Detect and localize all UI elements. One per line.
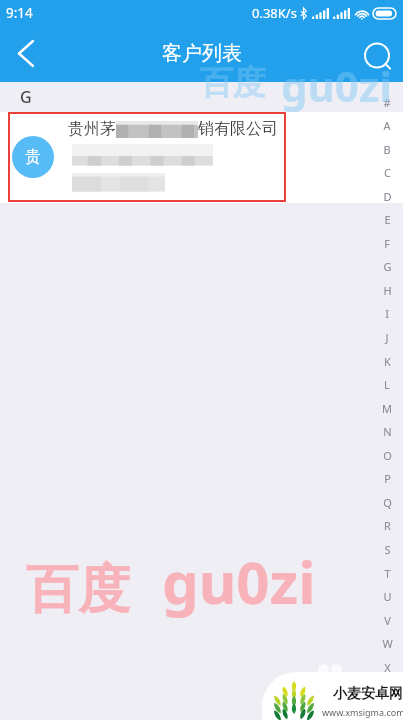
staticText: V — [384, 613, 391, 628]
button[interactable]: Action — [318, 664, 329, 675]
button[interactable]: V — [378, 609, 396, 632]
button[interactable]: B — [378, 138, 396, 161]
staticText: J — [385, 330, 389, 345]
staticText: B — [383, 142, 391, 157]
staticText: F — [384, 236, 390, 251]
staticText: T — [384, 566, 391, 581]
button[interactable]: J — [378, 326, 396, 349]
staticText: I — [385, 306, 389, 321]
staticText: C — [384, 165, 391, 180]
button[interactable]: Q — [378, 491, 396, 514]
staticText: 百度 — [200, 62, 266, 104]
staticText: Y — [384, 683, 391, 698]
button[interactable]: N — [378, 420, 396, 443]
staticText: 贵 — [25, 147, 41, 167]
button[interactable]: A — [378, 114, 396, 137]
button[interactable]: Back — [0, 25, 52, 82]
button[interactable]: L — [378, 373, 396, 396]
button[interactable]: G — [378, 255, 396, 278]
button[interactable]: W — [378, 632, 396, 655]
staticText: U — [383, 589, 392, 604]
staticText: L — [384, 377, 390, 392]
button[interactable]: C — [378, 161, 396, 184]
staticText: Q — [383, 495, 392, 510]
button[interactable]: M — [378, 397, 396, 420]
button[interactable]: T — [378, 562, 396, 585]
staticText: M — [382, 401, 392, 416]
button[interactable]: U — [378, 585, 396, 608]
button[interactable]: F — [378, 232, 396, 255]
staticText: N — [383, 424, 392, 439]
staticText: W — [382, 636, 393, 651]
staticText: H — [383, 283, 392, 298]
button[interactable]: P — [378, 467, 396, 490]
button[interactable]: E — [378, 208, 396, 231]
staticText: gu0zi — [162, 542, 316, 621]
button[interactable]: Y — [378, 679, 396, 702]
staticText: G — [383, 259, 392, 274]
staticText: Z — [384, 707, 391, 720]
staticText: O — [383, 448, 392, 463]
button[interactable]: H — [378, 279, 396, 302]
staticText: G — [20, 86, 32, 108]
button[interactable]: O — [378, 444, 396, 467]
button[interactable]: # — [378, 91, 396, 114]
staticText: gu0zi — [281, 57, 393, 114]
staticText: # — [383, 95, 391, 110]
button[interactable]: X — [378, 656, 396, 679]
staticText: A — [383, 118, 391, 133]
staticText: 销有限公司 — [198, 119, 278, 139]
button[interactable]: I — [378, 302, 396, 325]
staticText: 0.38K/s — [252, 4, 297, 22]
staticText: 客户列表 — [162, 41, 242, 66]
button[interactable]: R — [378, 514, 396, 537]
staticText: 贵州茅 — [68, 119, 116, 139]
button[interactable]: Search — [351, 25, 403, 82]
staticText: E — [384, 212, 391, 227]
staticText: D — [383, 189, 392, 204]
staticText: P — [384, 471, 391, 486]
button[interactable]: 贵 — [0, 112, 403, 203]
staticText: S — [384, 542, 391, 557]
staticText: 9:14 — [6, 4, 33, 22]
staticText: X — [384, 660, 391, 675]
staticText: www.xmsigma.com — [322, 706, 403, 718]
button[interactable]: D — [378, 185, 396, 208]
button[interactable]: K — [378, 350, 396, 373]
button[interactable]: Z — [378, 703, 396, 720]
button[interactable]: Action — [331, 664, 342, 675]
staticText: R — [384, 518, 391, 533]
button[interactable]: S — [378, 538, 396, 561]
staticText: 小麦安卓网 — [333, 685, 403, 703]
staticText: K — [384, 354, 391, 369]
staticText: 百度 — [26, 557, 130, 623]
